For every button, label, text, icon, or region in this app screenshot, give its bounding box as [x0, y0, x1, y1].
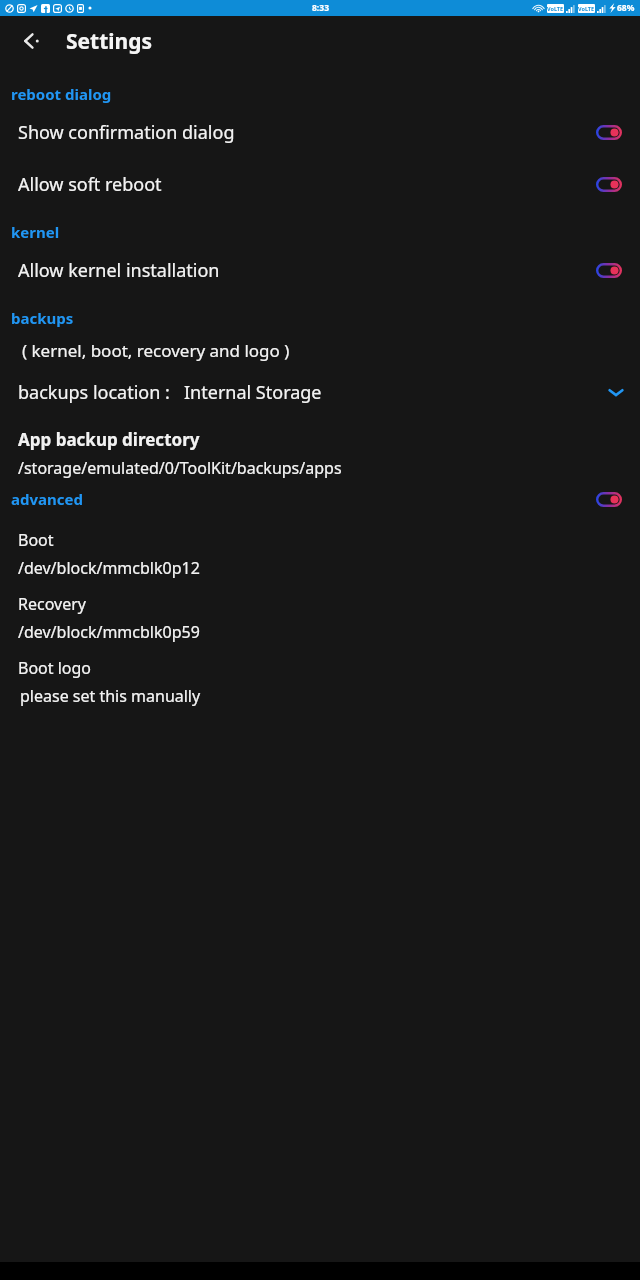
staticText: Recovery — [18, 593, 86, 615]
button[interactable]: Toggle — [596, 263, 622, 278]
other: Expand — [608, 386, 624, 398]
staticText: ( kernel, boot, recovery and logo ) — [22, 339, 290, 362]
button[interactable]: Toggle — [596, 177, 622, 192]
button[interactable]: Allow kernel installation — [0, 244, 640, 296]
button[interactable]: Show confirmation dialog — [0, 106, 640, 158]
staticText: Boot — [18, 529, 54, 551]
staticText: App backup directory — [18, 428, 200, 451]
staticText: kernel — [11, 222, 60, 242]
button[interactable]: Navigate up — [10, 19, 54, 63]
button[interactable]: backups location : — [0, 370, 640, 414]
staticText: Boot logo — [18, 657, 92, 679]
button[interactable]: Toggle — [596, 125, 622, 140]
staticText: Settings — [66, 27, 153, 56]
staticText: VoLTE — [578, 5, 595, 12]
staticText: 68% — [617, 2, 635, 14]
staticText: Internal Storage — [184, 380, 322, 405]
staticText: reboot dialog — [11, 84, 112, 104]
staticText: please set this manually — [20, 685, 201, 707]
staticText: Allow soft reboot — [18, 172, 162, 197]
staticText: Show confirmation dialog — [18, 120, 235, 145]
staticText: VoLTE — [547, 5, 564, 12]
staticText: /dev/block/mmcblk0p12 — [18, 557, 200, 579]
staticText: /storage/emulated/0/ToolKit/backups/apps — [18, 457, 342, 479]
staticText: backups location : — [18, 380, 170, 405]
staticText: 8:33 — [312, 2, 329, 14]
staticText: backups — [11, 308, 74, 328]
staticText: /dev/block/mmcblk0p59 — [18, 621, 200, 643]
staticText: Allow kernel installation — [18, 258, 220, 283]
button[interactable]: Allow soft reboot — [0, 158, 640, 210]
staticText: advanced — [11, 489, 83, 509]
button[interactable]: Toggle — [596, 492, 622, 507]
